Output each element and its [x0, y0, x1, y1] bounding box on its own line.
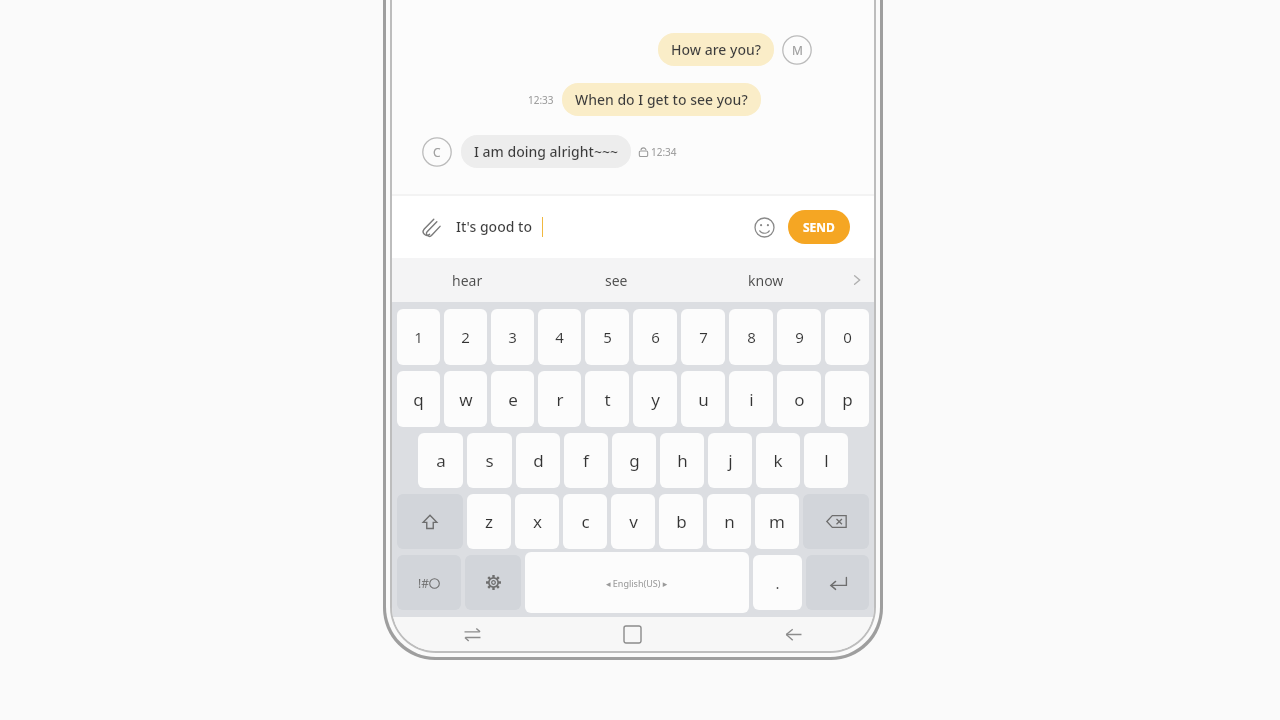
button[interactable]: k: [756, 433, 800, 488]
button[interactable]: a: [418, 433, 463, 488]
staticText: j: [728, 449, 733, 472]
staticText: l: [824, 449, 829, 472]
staticText: .: [775, 573, 780, 593]
button[interactable]: e: [491, 371, 534, 427]
staticText: v: [629, 510, 638, 533]
staticText: o: [794, 388, 805, 411]
staticText: 3: [508, 327, 517, 347]
button[interactable]: f: [564, 433, 608, 488]
button[interactable]: 6: [633, 309, 677, 365]
button[interactable]: see: [542, 258, 691, 302]
staticText: k: [773, 449, 783, 472]
staticText: 12:33: [528, 93, 554, 107]
staticText: x: [533, 510, 542, 533]
staticText: e: [508, 388, 518, 411]
button[interactable]: d: [516, 433, 560, 488]
button[interactable]: r: [538, 371, 581, 427]
button[interactable]: m: [755, 494, 799, 549]
button[interactable]: i: [729, 371, 773, 427]
staticText: 0: [843, 327, 852, 347]
button[interactable]: n: [707, 494, 751, 549]
button[interactable]: 3: [491, 309, 534, 365]
button[interactable]: z: [467, 494, 511, 549]
staticText: It's good to: [456, 217, 532, 236]
staticText: How are you?: [671, 40, 761, 59]
button[interactable]: 9: [777, 309, 821, 365]
button[interactable]: When do I get to see you?: [562, 83, 761, 116]
button[interactable]: g: [612, 433, 656, 488]
button[interactable]: 4: [538, 309, 581, 365]
staticText: 9: [795, 327, 804, 347]
button[interactable]: Recents: [392, 617, 552, 651]
staticText: 5: [603, 327, 612, 347]
button[interactable]: q: [397, 371, 440, 427]
staticText: 2: [461, 327, 470, 347]
button[interactable]: How are you?: [658, 33, 774, 66]
button[interactable]: More suggestions: [840, 258, 874, 302]
staticText: a: [436, 449, 446, 472]
staticText: g: [629, 449, 640, 472]
staticText: 8: [747, 327, 756, 347]
button[interactable]: SEND: [788, 210, 850, 244]
button[interactable]: h: [660, 433, 704, 488]
staticText: n: [724, 510, 735, 533]
button[interactable]: x: [515, 494, 559, 549]
button[interactable]: Settings: [465, 555, 521, 610]
staticText: 7: [699, 327, 708, 347]
staticText: q: [413, 388, 424, 411]
staticText: u: [698, 388, 709, 411]
staticText: t: [604, 388, 611, 411]
button[interactable]: .: [753, 555, 802, 610]
button[interactable]: Attach file: [416, 212, 446, 242]
button[interactable]: 1: [397, 309, 440, 365]
button[interactable]: Enter: [806, 555, 869, 610]
staticText: When do I get to see you?: [575, 90, 748, 109]
button[interactable]: Back: [713, 617, 874, 651]
button[interactable]: y: [633, 371, 677, 427]
button[interactable]: j: [708, 433, 752, 488]
button[interactable]: I am doing alright~~~: [461, 135, 631, 168]
button[interactable]: know: [691, 258, 840, 302]
button[interactable]: hear: [392, 258, 542, 302]
staticText: !#: [418, 575, 429, 591]
staticText: m: [769, 510, 785, 533]
button[interactable]: 0: [825, 309, 869, 365]
button[interactable]: Emoji: [749, 212, 779, 242]
button[interactable]: p: [825, 371, 869, 427]
staticText: p: [842, 388, 853, 411]
button[interactable]: 7: [681, 309, 725, 365]
button[interactable]: s: [467, 433, 512, 488]
staticText: know: [748, 271, 784, 290]
button[interactable]: Backspace: [803, 494, 869, 549]
button[interactable]: c: [563, 494, 607, 549]
staticText: z: [485, 510, 493, 533]
staticText: d: [533, 449, 544, 472]
staticText: f: [583, 449, 589, 472]
button[interactable]: w: [444, 371, 487, 427]
button[interactable]: o: [777, 371, 821, 427]
button[interactable]: ◂ English(US) ▸: [525, 552, 749, 613]
staticText: M: [792, 42, 803, 58]
button[interactable]: 8: [729, 309, 773, 365]
staticText: r: [556, 388, 564, 411]
button[interactable]: Shift: [397, 494, 463, 549]
staticText: i: [749, 388, 754, 411]
button[interactable]: 2: [444, 309, 487, 365]
button[interactable]: Home: [552, 617, 713, 651]
button[interactable]: b: [659, 494, 703, 549]
button[interactable]: v: [611, 494, 655, 549]
staticText: c: [581, 510, 590, 533]
button[interactable]: t: [585, 371, 629, 427]
staticText: SEND: [803, 219, 835, 235]
button[interactable]: 5: [585, 309, 629, 365]
staticText: b: [676, 510, 687, 533]
staticText: h: [677, 449, 688, 472]
button[interactable]: u: [681, 371, 725, 427]
staticText: hear: [452, 271, 483, 290]
staticText: see: [605, 271, 628, 290]
button[interactable]: Symbols: [397, 555, 461, 610]
staticText: w: [459, 388, 473, 411]
staticText: 4: [555, 327, 564, 347]
staticText: 12:34: [651, 145, 677, 159]
button[interactable]: l: [804, 433, 848, 488]
